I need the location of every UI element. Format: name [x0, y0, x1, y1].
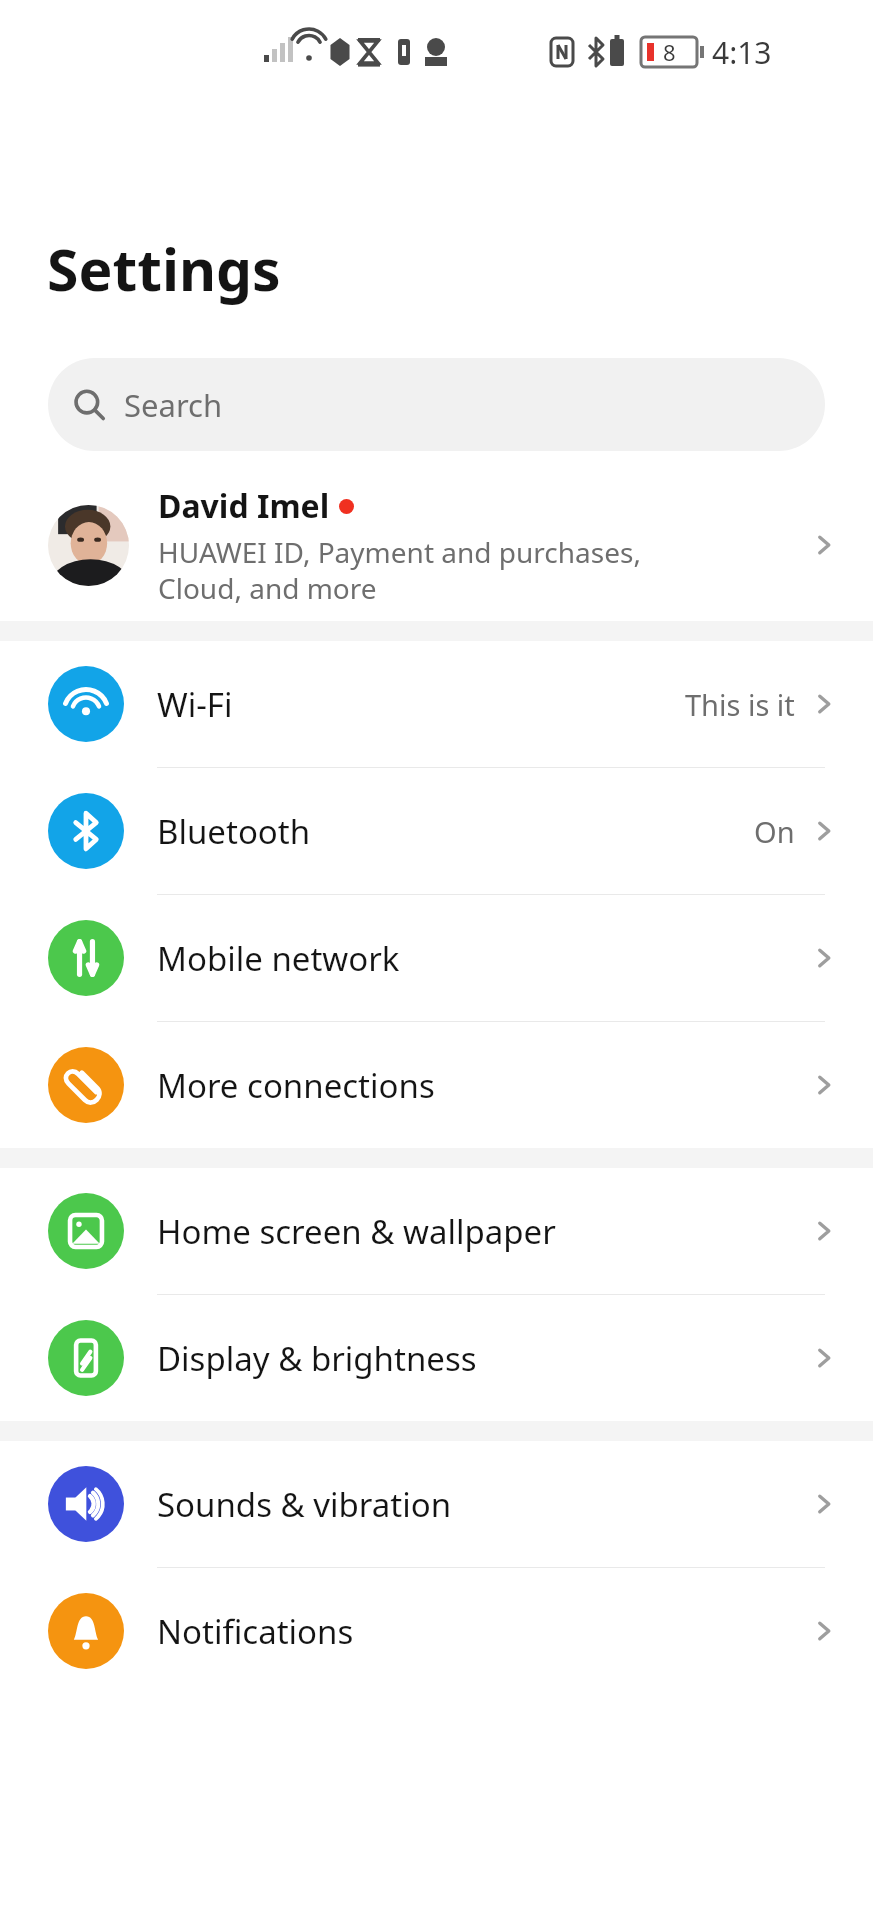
button[interactable]: Home screen and wallpaper [0, 1168, 873, 1294]
staticText: Mobile network [157, 936, 809, 981]
other: Home screen and wallpaper [48, 1193, 124, 1269]
button[interactable]: Bluetooth [0, 768, 873, 894]
button[interactable]: Display and brightness [0, 1295, 873, 1421]
staticText: Sounds & vibration [157, 1482, 809, 1527]
staticText: Settings [47, 230, 281, 308]
staticText: This is it [685, 685, 795, 724]
staticText: Search [124, 384, 223, 426]
button[interactable]: Sounds and vibration [0, 1441, 873, 1567]
button[interactable]: Notifications [0, 1568, 873, 1694]
other: Notifications [48, 1593, 124, 1669]
staticText: HUAWEI ID, Payment and purchases, Cloud,… [158, 533, 641, 607]
staticText: Home screen & wallpaper [157, 1209, 809, 1254]
other: Bluetooth [48, 793, 124, 869]
staticText: David Imel [158, 484, 330, 528]
button[interactable]: Mobile network [0, 895, 873, 1021]
staticText: 8 [663, 37, 676, 67]
staticText: Wi-Fi [157, 682, 685, 727]
staticText: On [754, 812, 795, 851]
other: Display and brightness [48, 1320, 124, 1396]
other: Sounds and vibration [48, 1466, 124, 1542]
other: More connections [48, 1047, 124, 1123]
button[interactable]: David Imel [0, 469, 873, 621]
staticText: Display & brightness [157, 1336, 809, 1381]
staticText: More connections [157, 1063, 809, 1108]
staticText: Notifications [157, 1609, 809, 1654]
other: Wi-Fi [48, 666, 124, 742]
other: Mobile network [48, 920, 124, 996]
button[interactable]: Wi-Fi [0, 641, 873, 767]
button[interactable]: More connections [0, 1022, 873, 1148]
staticText: Bluetooth [157, 809, 754, 854]
button[interactable]: Search [48, 358, 825, 451]
staticText: 4:13 [712, 32, 772, 73]
